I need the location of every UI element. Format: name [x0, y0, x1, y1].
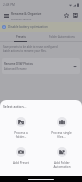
staticText: Rename DSW Photos [4, 62, 33, 66]
button[interactable]: Rename DSW Photos [2, 58, 80, 74]
button[interactable]: Presets [0, 32, 41, 41]
staticText: Rename & Organize [11, 12, 42, 16]
button[interactable]: More options [71, 11, 80, 20]
staticText: Advanced Rename [4, 67, 27, 71]
button[interactable]: Process single files [41, 117, 82, 139]
staticText: Presets [16, 35, 26, 39]
button[interactable]: Favourites [62, 11, 71, 20]
button[interactable]: Open navigation menu [2, 12, 10, 20]
staticText: Premium Version [11, 17, 32, 20]
staticText: Select action... [3, 104, 27, 109]
staticText: 2:48 PM [3, 3, 15, 7]
button[interactable]: Add Folder Automation [41, 147, 82, 169]
staticText: Save presets to be able to reuse configu… [3, 45, 58, 53]
staticText: Folder Automations [49, 35, 75, 39]
staticText: Process a folder... [14, 131, 28, 139]
staticText: Add Folder Automation [53, 161, 71, 169]
staticText: Disable battery optimization [8, 25, 48, 29]
staticText: Add Preset [13, 161, 29, 165]
staticText: Process single files... [51, 131, 72, 139]
button[interactable]: Folder Automations [41, 32, 82, 41]
button[interactable]: Add Preset [0, 147, 41, 165]
button[interactable]: Process a folder [0, 117, 41, 139]
